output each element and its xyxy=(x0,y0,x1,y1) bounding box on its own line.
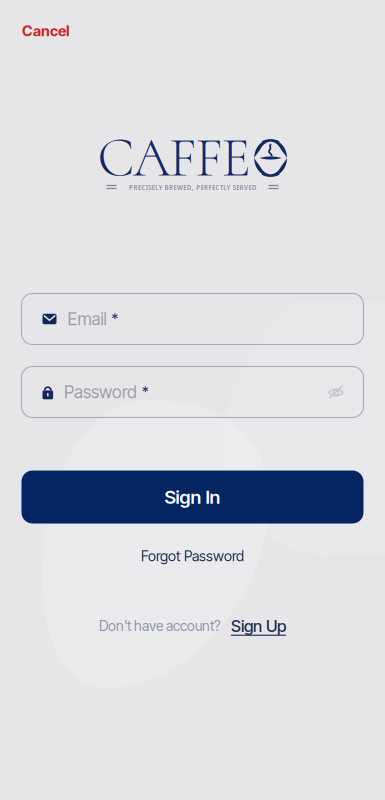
staticText: Forgot Password xyxy=(141,547,244,565)
button[interactable]: Sign In xyxy=(21,470,363,523)
staticText: * xyxy=(111,310,118,328)
button[interactable]: Password xyxy=(21,366,363,417)
staticText: PRECISELY BREWED, PERFECTLY SERVED xyxy=(129,182,256,192)
button[interactable]: Cancel xyxy=(22,21,82,41)
staticText: Sign In xyxy=(164,486,220,508)
staticText: * xyxy=(142,383,149,401)
button[interactable]: Sign Up xyxy=(231,616,286,636)
staticText: Cancel xyxy=(22,22,70,40)
staticText: CAFFE xyxy=(97,125,251,191)
staticText: Sign Up xyxy=(231,616,286,636)
staticText: Don't have account? xyxy=(99,617,220,634)
staticText: Password xyxy=(64,381,137,402)
button[interactable]: Email xyxy=(21,293,363,344)
button[interactable]: Forgot Password xyxy=(0,547,385,565)
staticText: Email xyxy=(67,308,106,329)
